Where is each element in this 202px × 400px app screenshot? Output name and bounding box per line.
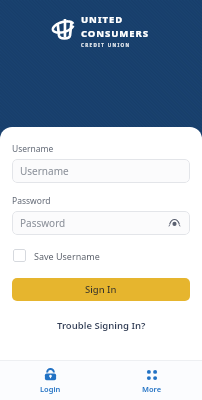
button[interactable]: More [101, 364, 202, 397]
staticText: Password [12, 195, 51, 207]
staticText: Username [12, 143, 54, 155]
button[interactable]: Sign In [12, 278, 190, 301]
other: Login [43, 367, 58, 382]
staticText: Username [20, 164, 69, 178]
button[interactable]: Show password [166, 215, 182, 231]
staticText: UNITED [81, 13, 124, 26]
staticText: CONSUMERS [81, 27, 149, 40]
button[interactable]: Trouble Signing In? [51, 316, 152, 335]
staticText: Sign In [85, 283, 117, 296]
staticText: Save Username [34, 250, 100, 262]
staticText: Trouble Signing In? [57, 319, 146, 332]
button[interactable]: Password [12, 211, 190, 235]
button[interactable]: Username [12, 159, 190, 183]
staticText: CREDIT UNION [81, 42, 131, 48]
button[interactable]: Login [0, 364, 101, 397]
staticText: Password [20, 216, 66, 230]
other: More [144, 367, 159, 382]
staticText: More [142, 384, 162, 394]
staticText: Login [40, 384, 61, 394]
button[interactable]: Save Username [12, 247, 101, 264]
